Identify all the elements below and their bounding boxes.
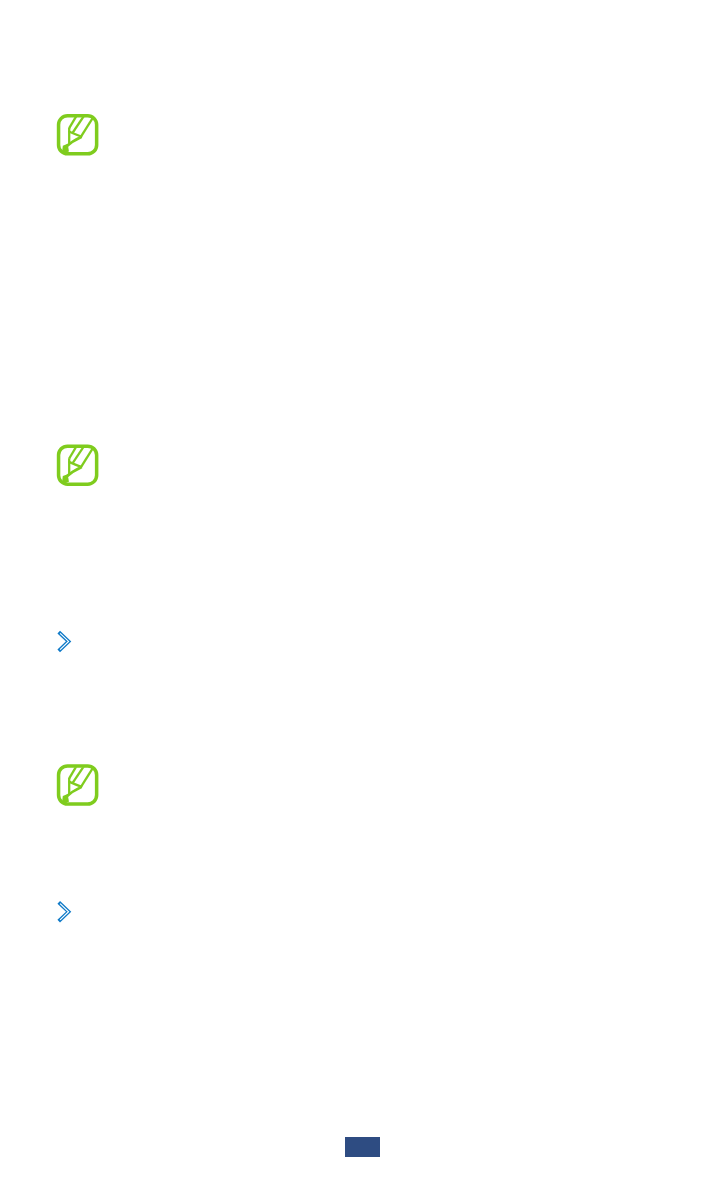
button[interactable]: S Note: [57, 764, 99, 806]
button[interactable]: S Note: [57, 114, 99, 156]
button[interactable]: Next step: [58, 901, 71, 922]
button[interactable]: S Note: [57, 444, 99, 486]
button[interactable]: Next step: [58, 631, 71, 652]
